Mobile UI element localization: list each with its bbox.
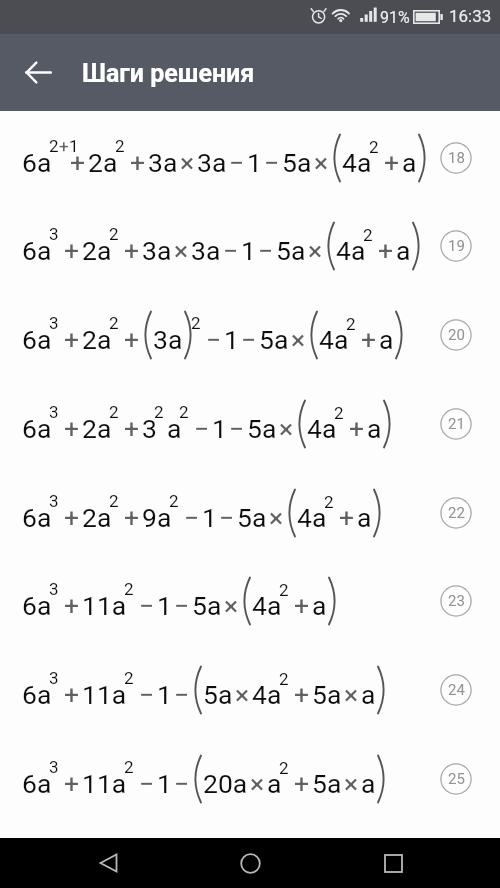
staticText: − bbox=[174, 679, 190, 710]
staticText: 91% bbox=[380, 8, 410, 27]
staticText: × bbox=[224, 590, 239, 621]
staticText: + bbox=[64, 413, 80, 444]
staticText: 5a bbox=[259, 324, 289, 355]
staticText: 25 bbox=[448, 770, 465, 788]
staticText: + bbox=[64, 324, 80, 355]
staticText: − bbox=[264, 147, 280, 178]
button[interactable]: Back bbox=[12, 34, 64, 111]
staticText: 2 bbox=[279, 580, 289, 600]
button[interactable]: 6a bbox=[0, 379, 500, 468]
staticText: 16:33 bbox=[449, 6, 492, 26]
staticText: + bbox=[64, 235, 80, 266]
staticText: 3a bbox=[148, 147, 178, 178]
button[interactable]: Home bbox=[215, 838, 285, 888]
staticText: 3 bbox=[49, 491, 59, 511]
staticText: 2 bbox=[179, 402, 189, 422]
staticText: 4a bbox=[336, 235, 366, 266]
button[interactable]: 6a bbox=[0, 645, 500, 734]
staticText: 6a bbox=[22, 590, 52, 621]
staticText: a bbox=[396, 235, 411, 266]
staticText: 3a bbox=[142, 235, 172, 266]
staticText: 6a bbox=[22, 147, 52, 178]
staticText: 2a bbox=[82, 235, 112, 266]
staticText: 2 bbox=[154, 402, 164, 422]
staticText: 2 bbox=[109, 224, 119, 244]
staticText: 20 bbox=[448, 326, 465, 344]
staticText: 3 bbox=[49, 313, 59, 333]
staticText: 5a bbox=[312, 768, 342, 799]
staticText: + bbox=[130, 147, 146, 178]
staticText: + bbox=[124, 235, 140, 266]
staticText: × bbox=[250, 768, 265, 799]
button[interactable]: 6a bbox=[0, 556, 500, 645]
staticText: a bbox=[312, 590, 327, 621]
staticText: − bbox=[258, 235, 274, 266]
staticText: 2 bbox=[279, 669, 289, 689]
button[interactable]: 6a bbox=[0, 113, 500, 202]
staticText: 3 bbox=[49, 757, 59, 777]
staticText: 4a bbox=[342, 147, 372, 178]
staticText: + bbox=[64, 768, 80, 799]
staticText: 2 bbox=[279, 758, 289, 778]
staticText: − bbox=[229, 147, 245, 178]
staticText: 1 bbox=[69, 136, 79, 156]
staticText: 6a bbox=[22, 502, 52, 533]
staticText: 18 bbox=[448, 149, 465, 167]
staticText: 3 bbox=[49, 224, 59, 244]
staticText: + bbox=[361, 324, 377, 355]
staticText: 2 bbox=[115, 136, 125, 156]
staticText: 2 bbox=[363, 225, 373, 245]
staticText: × bbox=[291, 324, 306, 355]
staticText: 19 bbox=[448, 237, 465, 255]
staticText: 5a bbox=[276, 235, 306, 266]
staticText: 2 bbox=[109, 313, 119, 333]
button[interactable]: 6a bbox=[0, 468, 500, 557]
staticText: a bbox=[361, 679, 376, 710]
staticText: 3 bbox=[142, 413, 157, 444]
staticText: − bbox=[223, 235, 239, 266]
button[interactable]: Recent apps bbox=[358, 838, 428, 888]
staticText: − bbox=[184, 502, 200, 533]
staticText: 1 bbox=[212, 413, 227, 444]
staticText: × bbox=[344, 768, 359, 799]
staticText: 3a bbox=[197, 147, 227, 178]
staticText: 5a bbox=[247, 413, 277, 444]
staticText: a bbox=[167, 413, 182, 444]
staticText: 2 bbox=[169, 491, 179, 511]
staticText: 2a bbox=[82, 324, 112, 355]
staticText: × bbox=[269, 502, 284, 533]
staticText: 1 bbox=[157, 679, 172, 710]
staticText: × bbox=[344, 679, 359, 710]
staticText: − bbox=[174, 590, 190, 621]
staticText: 1 bbox=[157, 590, 172, 621]
staticText: 5a bbox=[282, 147, 312, 178]
staticText: 4a bbox=[319, 324, 349, 355]
staticText: 3 bbox=[49, 579, 59, 599]
staticText: + bbox=[294, 768, 310, 799]
staticText: − bbox=[194, 413, 210, 444]
staticText: − bbox=[229, 413, 245, 444]
button[interactable]: 6a bbox=[0, 734, 500, 823]
staticText: − bbox=[206, 324, 222, 355]
staticText: 21 bbox=[448, 415, 465, 433]
button[interactable]: 6a bbox=[0, 201, 500, 290]
button[interactable]: Back bbox=[73, 838, 143, 888]
staticText: 6a bbox=[22, 768, 52, 799]
staticText: 20a bbox=[203, 768, 248, 799]
staticText: 1 bbox=[224, 324, 239, 355]
staticText: 5a bbox=[192, 590, 222, 621]
staticText: a bbox=[379, 324, 394, 355]
staticText: + bbox=[124, 413, 140, 444]
staticText: + bbox=[64, 590, 80, 621]
staticText: 23 bbox=[448, 592, 465, 610]
staticText: + bbox=[70, 147, 86, 178]
staticText: 24 bbox=[448, 681, 465, 699]
staticText: + bbox=[124, 502, 140, 533]
button[interactable]: 6a bbox=[0, 290, 500, 379]
staticText: 2 bbox=[109, 491, 119, 511]
staticText: + bbox=[384, 147, 400, 178]
staticText: a bbox=[367, 413, 382, 444]
staticText: 2 bbox=[191, 313, 201, 333]
staticText: × bbox=[180, 147, 195, 178]
staticText: 1 bbox=[241, 235, 256, 266]
